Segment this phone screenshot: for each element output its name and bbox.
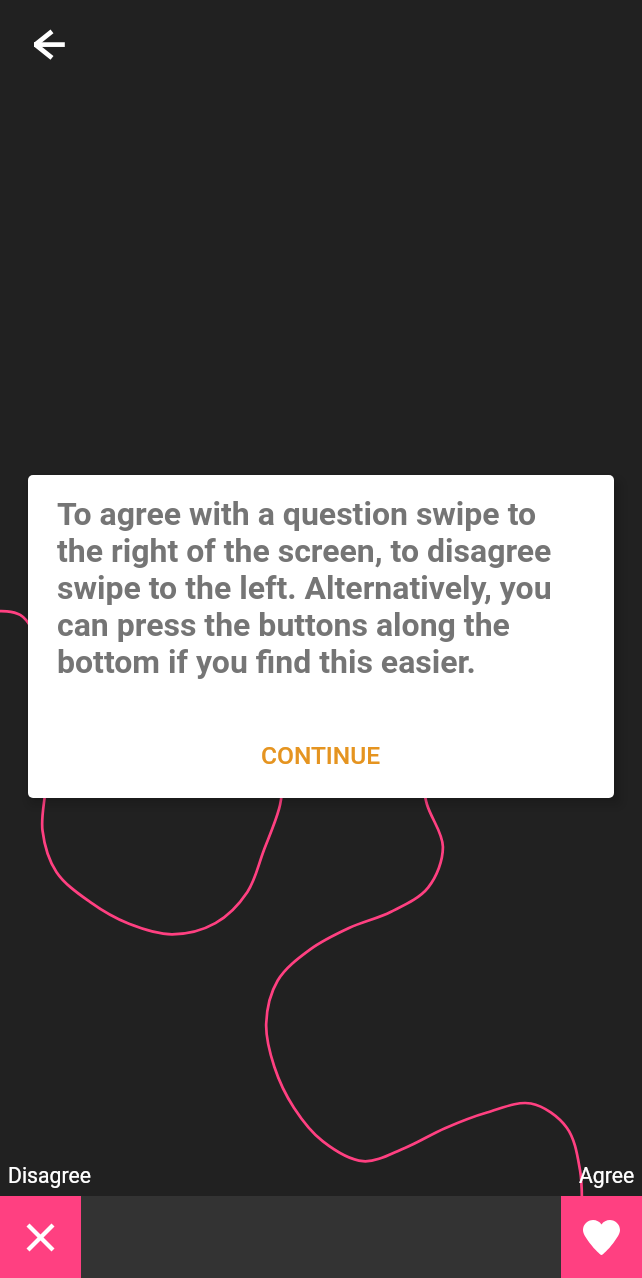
button[interactable]: Agree — [561, 1196, 642, 1278]
button[interactable]: Disagree — [0, 1196, 81, 1278]
staticText: CONTINUE — [261, 741, 381, 770]
staticText: Agree — [579, 1163, 635, 1188]
staticText: Disagree — [8, 1163, 91, 1188]
button[interactable]: Back — [9, 9, 80, 80]
staticText: To agree with a question swipe to the ri… — [57, 495, 577, 680]
button[interactable]: CONTINUE — [243, 729, 399, 782]
